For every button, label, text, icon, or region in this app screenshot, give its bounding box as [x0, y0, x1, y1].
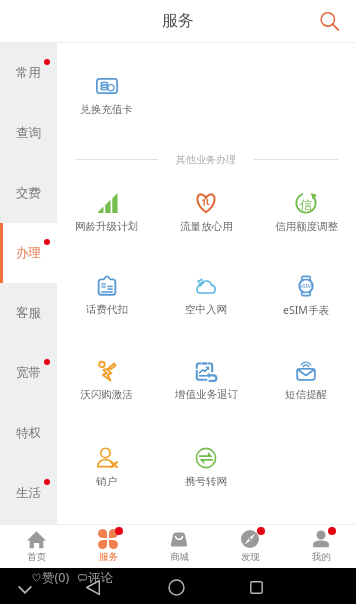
staticText: 办理: [16, 245, 41, 261]
button[interactable]: 发现: [214, 525, 285, 568]
button[interactable]: 生活: [0, 463, 57, 523]
staticText: 携号转网: [185, 475, 227, 488]
staticText: 销户: [96, 475, 117, 488]
staticText: 其他业务办理: [176, 153, 236, 166]
button[interactable]: 网龄升级计划: [57, 192, 156, 233]
button[interactable]: 沃闪购激活: [57, 360, 156, 401]
button[interactable]: 兑换充值卡: [57, 75, 156, 116]
button[interactable]: 我的: [285, 525, 356, 568]
staticText: eSIM手表: [283, 303, 329, 317]
staticText: eSIM: [300, 283, 312, 290]
button[interactable]: 服务: [72, 525, 143, 568]
staticText: 服务: [162, 11, 194, 31]
button[interactable]: 销户: [57, 447, 156, 488]
button[interactable]: 查询: [0, 103, 57, 163]
staticText: 服务: [99, 551, 118, 563]
staticText: 首页: [27, 551, 46, 563]
button[interactable]: 特权: [0, 403, 57, 463]
staticText: 宽带: [16, 365, 41, 381]
button[interactable]: 常用: [0, 43, 57, 103]
button[interactable]: eSIM: [256, 275, 356, 317]
staticText: 沃闪购激活: [80, 388, 133, 401]
staticText: 兑换充值卡: [80, 103, 133, 116]
staticText: 我的: [312, 551, 331, 563]
staticText: 短信提醒: [285, 388, 327, 401]
staticText: 生活: [16, 485, 41, 501]
button[interactable]: 交费: [0, 163, 57, 223]
staticText: 话费代扣: [86, 303, 128, 316]
staticText: 交费: [16, 185, 41, 201]
staticText: 流量放心用: [180, 220, 233, 233]
staticText: 特权: [16, 425, 41, 441]
button[interactable]: 首页: [0, 525, 72, 568]
button[interactable]: 信: [256, 192, 356, 233]
button[interactable]: 流量放心用: [156, 192, 256, 233]
button[interactable]: 携号转网: [156, 447, 256, 488]
button[interactable]: 话费代扣: [57, 275, 156, 316]
button[interactable]: 客服: [0, 283, 57, 343]
staticText: 客服: [16, 305, 41, 321]
button[interactable]: 商城: [143, 525, 214, 568]
staticText: 网龄升级计划: [75, 220, 138, 233]
button[interactable]: 办理: [0, 223, 57, 283]
button[interactable]: 短信提醒: [256, 360, 356, 401]
staticText: 赞(0): [42, 569, 70, 586]
staticText: 信: [300, 197, 312, 212]
staticText: 查询: [16, 125, 41, 141]
staticText: 增值业务退订: [175, 388, 238, 401]
button[interactable]: 宽带: [0, 343, 57, 403]
staticText: 常用: [16, 65, 41, 81]
staticText: 信用额度调整: [275, 220, 338, 233]
button[interactable]: 增值业务退订: [156, 360, 256, 401]
button[interactable]: Search: [314, 6, 344, 36]
staticText: 空中入网: [185, 303, 227, 316]
button[interactable]: 空中入网: [156, 275, 256, 316]
staticText: 商城: [170, 551, 189, 563]
staticText: 评论: [88, 570, 113, 586]
staticText: 发现: [241, 551, 260, 563]
